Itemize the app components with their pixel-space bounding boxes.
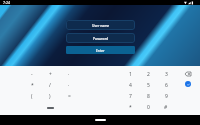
button[interactable]: *	[24, 80, 40, 90]
staticText: (	[31, 93, 33, 100]
staticText: 4	[129, 82, 132, 89]
staticText: -	[31, 71, 33, 78]
staticText: 8	[147, 93, 150, 100]
button[interactable]: -	[24, 69, 40, 79]
button[interactable]: Backspace	[181, 69, 194, 79]
button[interactable]: 0	[140, 102, 156, 112]
button[interactable]: )	[42, 91, 58, 101]
staticText: 1	[129, 71, 132, 78]
staticText: User name	[92, 23, 110, 27]
staticText: #	[164, 104, 168, 111]
staticText: 3	[165, 71, 168, 78]
button[interactable]: (	[24, 91, 40, 101]
staticText: 0	[147, 104, 150, 111]
staticText: 5	[147, 82, 150, 89]
staticText: 2	[147, 71, 150, 78]
button[interactable]: #	[158, 102, 174, 112]
button[interactable]: User name	[66, 20, 135, 30]
staticText: /	[49, 82, 51, 89]
button[interactable]: 3	[158, 69, 174, 79]
button[interactable]: ·	[61, 69, 77, 79]
button[interactable]: 5	[140, 80, 156, 90]
staticText: *	[129, 104, 132, 111]
button[interactable]: *	[122, 102, 138, 112]
staticText: Password	[93, 36, 109, 40]
button[interactable]: 9	[158, 91, 174, 101]
staticText: )	[49, 93, 51, 100]
button[interactable]: Home	[95, 119, 106, 121]
button[interactable]: 7	[122, 91, 138, 101]
button[interactable]: Enter	[185, 81, 191, 87]
button[interactable]: 1	[122, 69, 138, 79]
staticText: Enter	[96, 48, 105, 52]
staticText: ·	[68, 82, 70, 89]
staticText: 7:24	[3, 0, 11, 5]
staticText: 7	[129, 93, 132, 100]
button[interactable]: 4	[122, 80, 138, 90]
button[interactable]: 6	[158, 80, 174, 90]
button[interactable]: =	[61, 91, 77, 101]
button[interactable]: Password	[66, 33, 135, 43]
staticText: =	[68, 93, 71, 100]
staticText: ·	[68, 71, 70, 78]
button[interactable]: ·	[61, 80, 77, 90]
staticText: 9	[165, 93, 168, 100]
staticText: 6	[165, 82, 168, 89]
button[interactable]: Space	[47, 107, 54, 109]
staticText: *	[31, 82, 34, 89]
button[interactable]: 2	[140, 69, 156, 79]
staticText: +	[49, 71, 52, 78]
button[interactable]: +	[42, 69, 58, 79]
button[interactable]: Enter	[66, 46, 135, 54]
button[interactable]: 8	[140, 91, 156, 101]
button[interactable]: /	[42, 80, 58, 90]
